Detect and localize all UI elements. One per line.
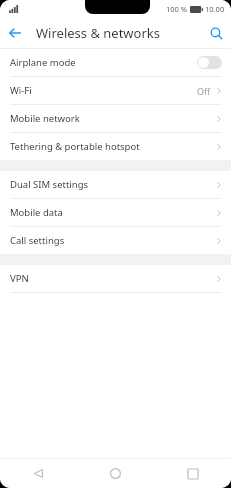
button[interactable]: Home bbox=[77, 459, 154, 488]
button[interactable]: Airplane mode toggle bbox=[197, 56, 222, 69]
staticText: Off bbox=[197, 85, 211, 97]
staticText: Mobile network bbox=[10, 112, 216, 125]
staticText: Mobile data bbox=[10, 206, 216, 219]
staticText: Wireless & networks bbox=[36, 24, 160, 42]
button[interactable]: Mobile network bbox=[0, 105, 231, 132]
staticText: 10.00 bbox=[205, 4, 225, 14]
button[interactable]: Mobile data bbox=[0, 199, 231, 226]
button[interactable]: Tethering & portable hotspot bbox=[0, 133, 231, 160]
staticText: 100 % bbox=[166, 4, 188, 14]
button[interactable]: Back bbox=[0, 459, 77, 488]
button[interactable]: VPN bbox=[0, 265, 231, 292]
button[interactable]: Recent apps bbox=[154, 459, 231, 488]
button[interactable]: Dual SIM settings bbox=[0, 171, 231, 198]
button[interactable]: Back bbox=[0, 18, 30, 48]
button[interactable]: Airplane mode bbox=[0, 49, 231, 76]
button[interactable]: Call settings bbox=[0, 227, 231, 254]
staticText: VPN bbox=[10, 272, 216, 285]
button[interactable]: Wi-Fi bbox=[0, 77, 231, 104]
staticText: Airplane mode bbox=[10, 56, 197, 69]
staticText: Dual SIM settings bbox=[10, 178, 216, 191]
staticText: Call settings bbox=[10, 234, 216, 247]
button[interactable]: Search bbox=[201, 18, 231, 48]
staticText: Tethering & portable hotspot bbox=[10, 140, 216, 153]
staticText: Wi-Fi bbox=[10, 84, 197, 97]
